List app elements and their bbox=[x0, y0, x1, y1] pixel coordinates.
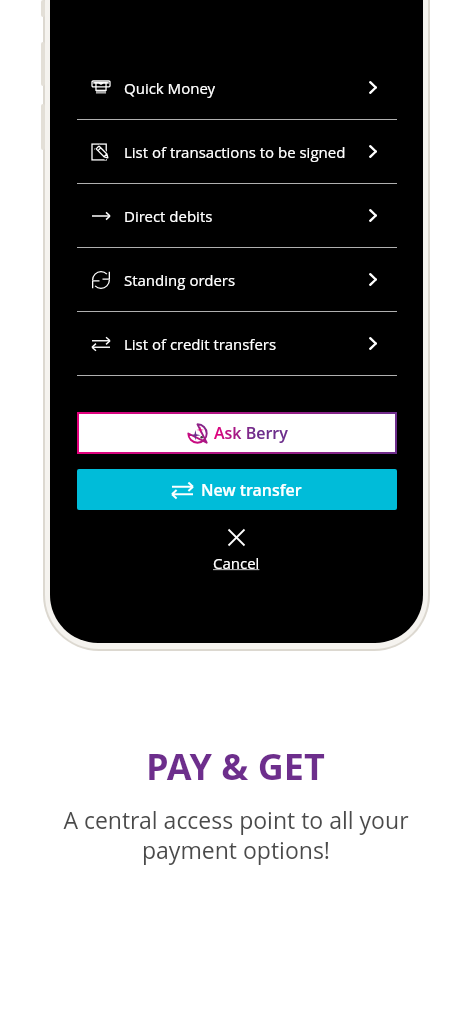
button[interactable]: New transfer bbox=[77, 469, 397, 510]
staticText: Standing orders bbox=[124, 270, 236, 290]
button[interactable]: Direct debits bbox=[77, 184, 397, 247]
staticText: List of transactions to be signed bbox=[124, 142, 346, 162]
staticText: Direct debits bbox=[124, 206, 213, 226]
staticText: PAY & GET bbox=[146, 742, 325, 791]
staticText: A central access point to all your payme… bbox=[63, 804, 409, 866]
button[interactable]: Ask Berry bbox=[77, 412, 397, 454]
staticText: New transfer bbox=[201, 479, 302, 501]
button[interactable]: Close bbox=[186, 528, 286, 573]
button[interactable]: Standing orders bbox=[77, 248, 397, 311]
staticText: Cancel bbox=[213, 553, 260, 573]
button[interactable]: List of credit transfers bbox=[77, 312, 397, 375]
staticText: Ask Berry bbox=[214, 422, 288, 444]
staticText: List of credit transfers bbox=[124, 334, 277, 354]
button[interactable]: List of transactions to be signed bbox=[77, 120, 397, 183]
button[interactable]: Quick Money bbox=[77, 56, 397, 119]
other: Close bbox=[227, 528, 246, 547]
staticText: Quick Money bbox=[124, 78, 216, 98]
